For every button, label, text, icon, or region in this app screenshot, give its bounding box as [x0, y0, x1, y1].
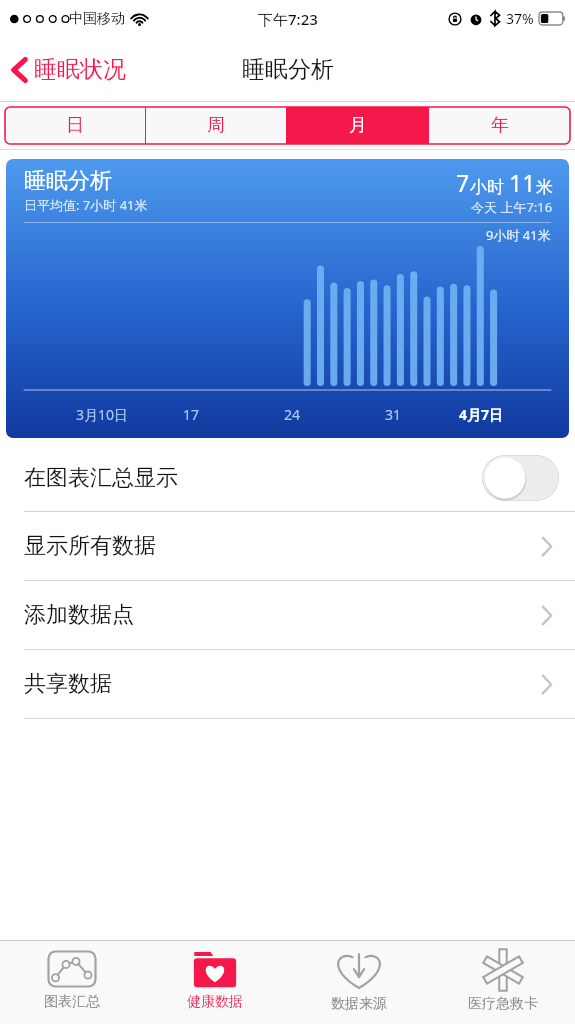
staticText: 睡眠分析: [24, 167, 112, 195]
staticText: 17: [183, 405, 200, 424]
staticText: 健康数据: [187, 993, 243, 1011]
button[interactable]: 共享数据: [0, 650, 575, 718]
staticText: 9小时 41米: [486, 226, 551, 244]
staticText: 周: [207, 114, 225, 137]
staticText: 睡眠分析: [242, 55, 334, 84]
button[interactable]: 图表汇总: [0, 941, 143, 1024]
staticText: 24: [284, 405, 301, 424]
button[interactable]: 添加数据点: [0, 581, 575, 649]
staticText: 共享数据: [24, 670, 112, 698]
button[interactable]: 年: [429, 107, 570, 144]
staticText: 显示所有数据: [24, 532, 156, 560]
staticText: 11: [509, 167, 536, 198]
staticText: 下午7:23: [258, 9, 318, 29]
button[interactable]: 睡眠状况: [0, 49, 138, 90]
button[interactable]: 在图表汇总显示: [0, 444, 575, 511]
staticText: 添加数据点: [24, 601, 134, 629]
button[interactable]: 日: [5, 107, 145, 144]
staticText: 图表汇总: [44, 993, 100, 1011]
staticText: 中国移动: [69, 10, 125, 28]
staticText: 日平均值: 7小时 41米: [24, 196, 148, 214]
staticText: 4月7日: [459, 405, 504, 424]
button[interactable]: 睡眠分析: [6, 159, 569, 438]
staticText: 睡眠状况: [34, 55, 126, 84]
staticText: 月: [349, 114, 367, 137]
button[interactable]: 健康数据: [143, 941, 287, 1024]
staticText: 年: [491, 114, 509, 137]
staticText: 数据来源: [331, 995, 387, 1013]
staticText: 今天 上午7:16: [471, 198, 553, 216]
staticText: 小时: [470, 175, 509, 198]
button[interactable]: 月: [287, 107, 428, 144]
button[interactable]: 数据来源: [287, 941, 431, 1024]
staticText: 米: [536, 177, 553, 198]
button[interactable]: 医疗急救卡: [431, 941, 575, 1024]
button[interactable]: 周: [146, 107, 286, 144]
staticText: 37%: [506, 9, 534, 28]
staticText: 3月10日: [76, 405, 129, 424]
other: 在图表汇总显示开关: [482, 455, 559, 501]
button[interactable]: 显示所有数据: [0, 512, 575, 580]
staticText: 医疗急救卡: [468, 995, 538, 1013]
staticText: 31: [385, 405, 402, 424]
staticText: 7: [456, 167, 470, 198]
staticText: 日: [66, 114, 84, 137]
staticText: 在图表汇总显示: [24, 464, 178, 492]
